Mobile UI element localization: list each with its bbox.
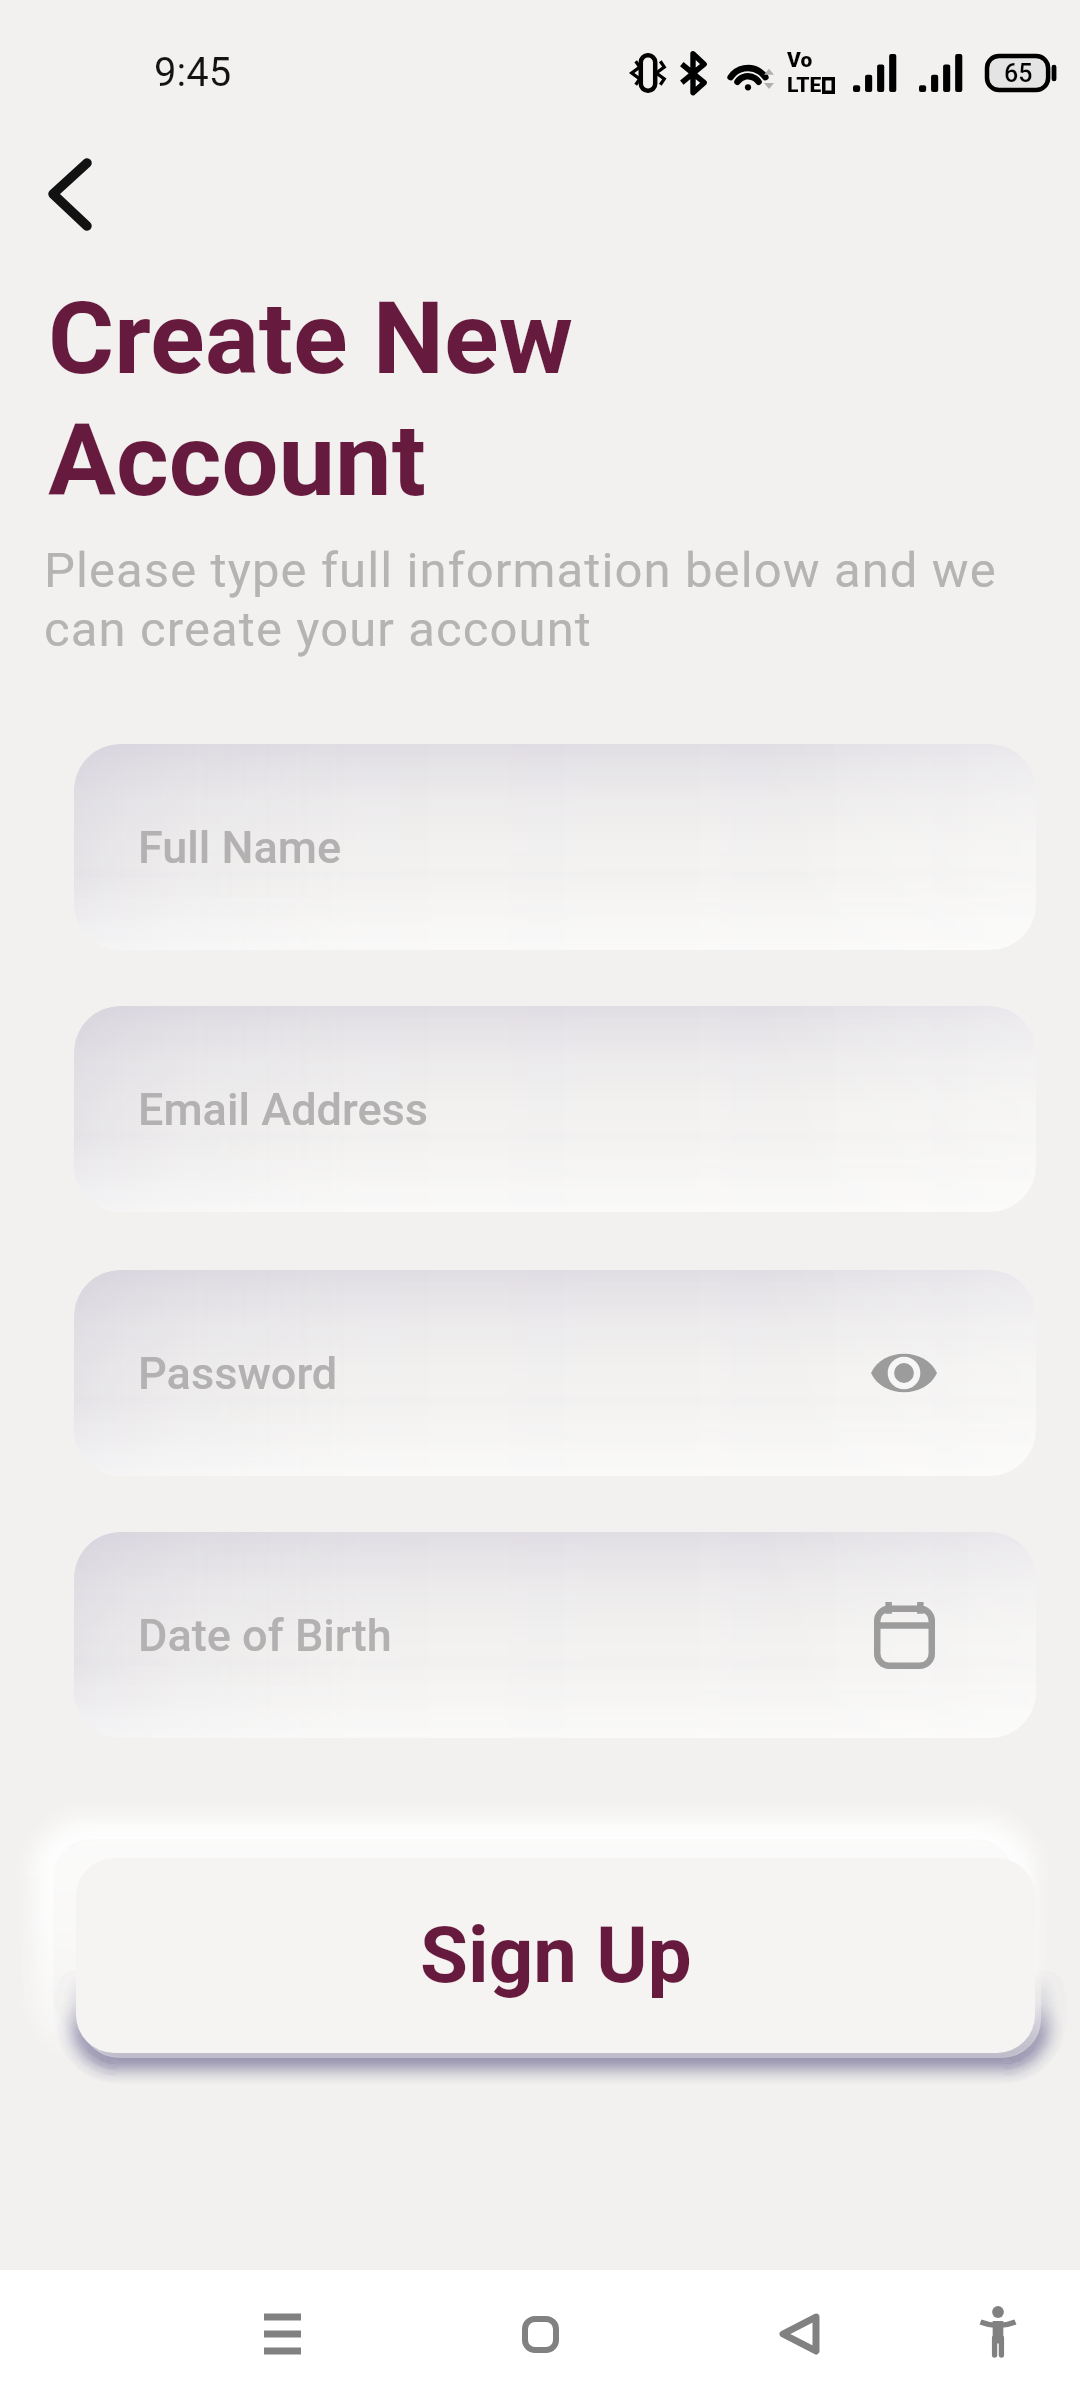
button[interactable]: Full Name — [74, 744, 1036, 950]
button[interactable]: Date of Birth — [74, 1532, 1036, 1738]
button[interactable]: Accessibility — [956, 2290, 1040, 2374]
staticText: 9:45 — [154, 49, 232, 96]
staticText: Email Address — [138, 1083, 429, 1136]
staticText: Date of Birth — [138, 1609, 392, 1662]
staticText: Please type full information below and w… — [44, 542, 1007, 658]
button[interactable]: Sign Up — [76, 1858, 1035, 2053]
button[interactable]: Password — [74, 1270, 1036, 1476]
button[interactable]: Show password — [868, 1337, 940, 1409]
staticText: 65 — [1004, 59, 1033, 88]
button[interactable]: Recent apps — [240, 2292, 324, 2376]
button[interactable]: Back — [756, 2292, 840, 2376]
staticText: Full Name — [138, 821, 342, 874]
staticText: Create New Account — [48, 279, 573, 519]
button[interactable]: Back — [18, 152, 122, 236]
staticText: Vo — [787, 48, 813, 73]
button[interactable]: Email Address — [74, 1006, 1036, 1212]
button[interactable]: Pick date — [868, 1599, 940, 1671]
staticText: LTE — [787, 73, 822, 98]
staticText: Password — [138, 1347, 338, 1400]
button[interactable]: Home — [498, 2292, 582, 2376]
staticText: Sign Up — [420, 1910, 692, 2001]
